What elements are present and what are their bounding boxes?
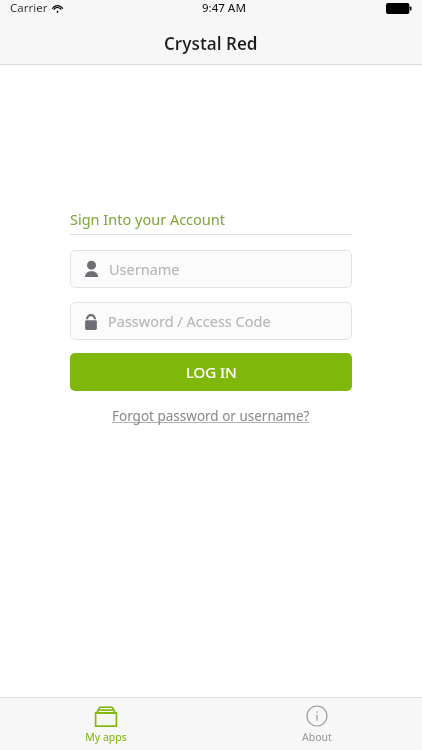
button[interactable]: LOG IN [70,353,352,391]
staticText: Password / Access Code [108,311,271,331]
staticText: My apps [85,730,127,744]
staticText: Username [109,259,180,279]
staticText: Forgot password or username? [112,407,310,425]
staticText: About [302,730,332,744]
staticText: 9:47 AM [202,0,246,16]
button[interactable]: About [284,701,350,748]
staticText: LOG IN [186,362,237,382]
button[interactable]: My apps [67,701,145,748]
button[interactable]: Password / Access Code [70,302,352,340]
button[interactable]: Username [70,250,352,288]
staticText: Crystal Red [164,32,258,55]
staticText: Carrier [10,0,48,16]
button[interactable]: Forgot password or username? [108,403,314,429]
staticText: Sign Into your Account [70,209,226,229]
